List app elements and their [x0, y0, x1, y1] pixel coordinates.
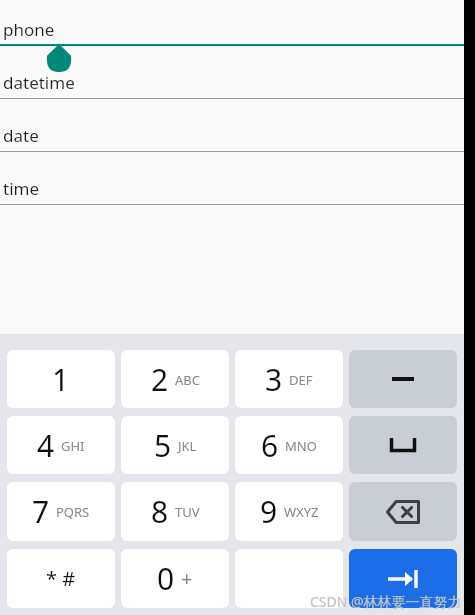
button[interactable]: time	[0, 152, 464, 205]
staticText: CSDN @林林要一直努力	[310, 592, 462, 611]
staticText: DEF	[289, 371, 313, 389]
button[interactable]: 3	[235, 350, 343, 408]
staticText: 5	[154, 425, 172, 466]
staticText: WXYZ	[284, 503, 319, 521]
button[interactable]: 5	[121, 416, 229, 474]
button[interactable]: Next	[349, 549, 457, 608]
staticText: date	[3, 124, 39, 147]
button[interactable]	[235, 549, 343, 608]
staticText: 8	[151, 491, 169, 532]
staticText: ABC	[175, 371, 200, 389]
button[interactable]: 4	[7, 416, 115, 474]
button[interactable]: 6	[235, 416, 343, 474]
button[interactable]: Space	[349, 416, 457, 474]
staticText: * #	[46, 565, 76, 592]
staticText: 9	[260, 491, 278, 532]
button[interactable]: 1	[7, 350, 115, 408]
staticText: 0	[157, 558, 175, 599]
button[interactable]: 0	[121, 549, 229, 608]
button[interactable]: Dash	[349, 350, 457, 408]
staticText: TUV	[175, 503, 200, 521]
staticText: 4	[37, 425, 55, 466]
staticText: GHI	[61, 437, 85, 455]
staticText: JKL	[178, 437, 197, 455]
staticText: PQRS	[56, 503, 90, 521]
staticText: time	[3, 177, 40, 200]
staticText: 2	[151, 359, 169, 400]
button[interactable]: date	[0, 99, 464, 152]
button[interactable]: Backspace	[349, 482, 457, 541]
staticText: datetime	[3, 71, 75, 94]
staticText: MNO	[285, 437, 317, 455]
button[interactable]: datetime	[0, 46, 464, 99]
staticText: 7	[32, 491, 50, 532]
button[interactable]: * #	[7, 549, 115, 608]
button[interactable]: 2	[121, 350, 229, 408]
staticText: 6	[261, 425, 279, 466]
staticText: 1	[52, 359, 70, 400]
staticText: +	[181, 565, 193, 592]
button[interactable]: 8	[121, 482, 229, 541]
staticText: phone	[3, 18, 55, 41]
staticText: 3	[265, 359, 283, 400]
button[interactable]: phone	[0, 0, 464, 46]
button[interactable]: 9	[235, 482, 343, 541]
button[interactable]: 7	[7, 482, 115, 541]
